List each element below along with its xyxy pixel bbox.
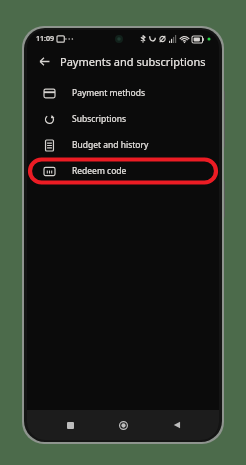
button[interactable]: Back <box>166 414 188 436</box>
button[interactable]: Back <box>34 51 54 71</box>
staticText: Payments and subscriptions <box>60 54 206 69</box>
button[interactable]: Recent apps <box>59 414 81 436</box>
button[interactable]: Redeem code <box>30 158 216 184</box>
button[interactable]: Payment methods <box>30 80 216 106</box>
button[interactable]: Home <box>112 414 134 436</box>
staticText: Subscriptions <box>72 113 126 125</box>
button[interactable]: Subscriptions <box>30 106 216 132</box>
staticText: Redeem code <box>72 165 127 177</box>
staticText: Budget and history <box>72 139 149 151</box>
staticText: Payment methods <box>72 87 146 99</box>
button[interactable]: Budget and history <box>30 132 216 158</box>
staticText: 11:09 <box>36 34 54 44</box>
